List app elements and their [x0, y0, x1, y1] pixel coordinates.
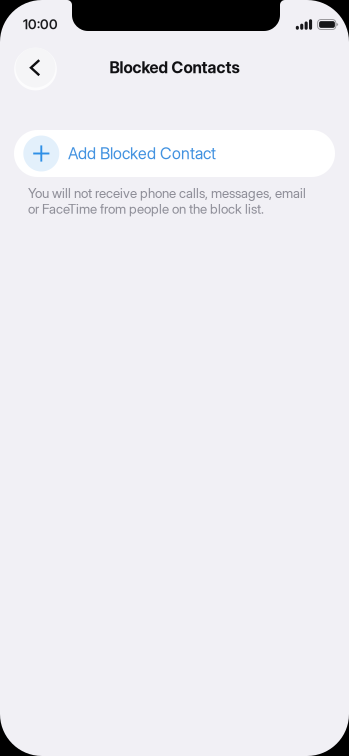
staticText: Blocked Contacts [109, 58, 239, 77]
staticText: 10:00 [23, 16, 58, 32]
staticText: or FaceTime from people on the block lis… [28, 201, 264, 217]
staticText: Add Blocked Contact [68, 144, 216, 163]
staticText: You will not receive phone calls, messag… [28, 185, 306, 201]
button[interactable]: Add Blocked Contact [14, 130, 335, 177]
button[interactable]: Back [13, 45, 57, 89]
